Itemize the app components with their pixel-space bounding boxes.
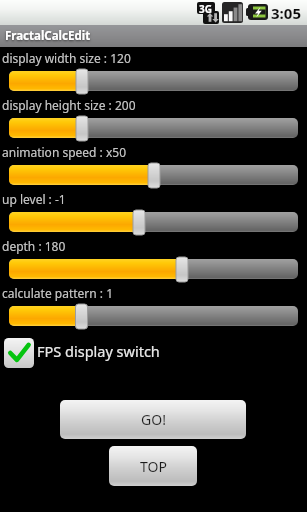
staticText: calculate pattern : 1 [2, 285, 114, 301]
staticText: depth : 180 [2, 238, 66, 254]
button[interactable]: Adjust value [0, 69, 307, 94]
button[interactable]: Adjust value [0, 163, 307, 188]
button[interactable]: Adjust value [0, 257, 307, 282]
staticText: 3:05 [271, 3, 301, 23]
staticText: 3G [199, 2, 212, 16]
button[interactable]: Adjust value [0, 116, 307, 141]
staticText: FPS display switch [37, 341, 160, 361]
staticText: GO! [141, 410, 166, 429]
staticText: FractalCalcEdit [5, 28, 91, 44]
button[interactable]: TOP [109, 446, 197, 486]
staticText: display height size : 200 [2, 97, 136, 113]
staticText: animation speed : x50 [2, 144, 126, 160]
staticText: up level : -1 [2, 191, 66, 207]
button[interactable]: Adjust value [0, 210, 307, 235]
staticText: display width size : 120 [2, 50, 131, 66]
button[interactable]: FPS display switch [0, 338, 307, 370]
staticText: TOP [140, 457, 167, 476]
button[interactable]: Adjust value [0, 304, 307, 329]
button[interactable]: GO! [60, 400, 246, 439]
